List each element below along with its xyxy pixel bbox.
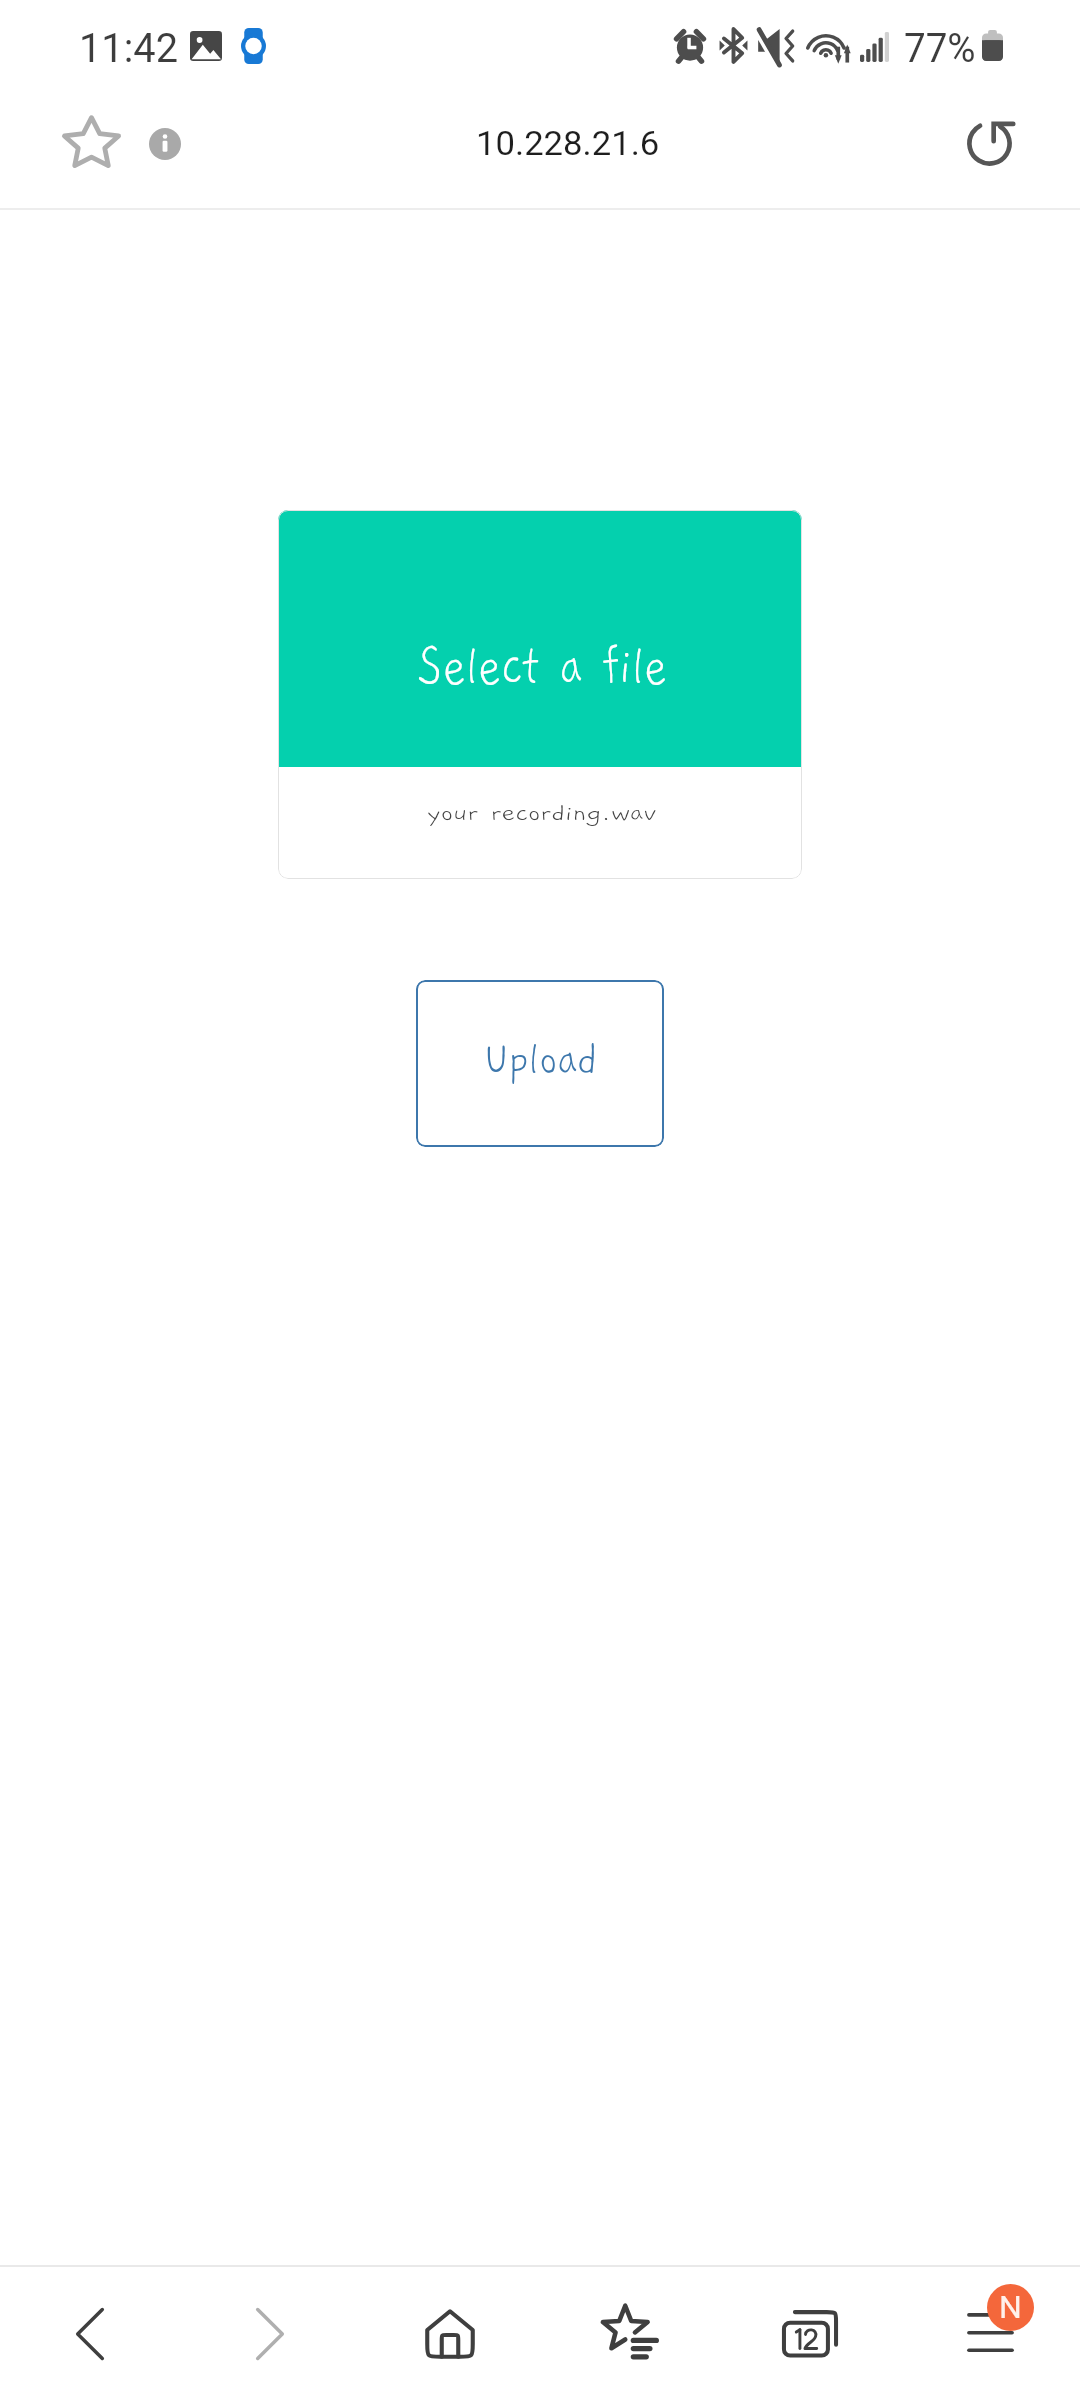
staticText: your recording.wav (427, 801, 657, 826)
button[interactable]: Select a file (278, 510, 802, 879)
button[interactable]: Tabs (720, 2267, 900, 2400)
button[interactable]: Reload page (945, 98, 1034, 188)
staticText: Upload (484, 1033, 598, 1085)
button[interactable]: Home (360, 2267, 540, 2400)
button[interactable]: Page information (134, 113, 195, 174)
staticText: N (999, 2288, 1022, 2326)
button[interactable]: Forward (180, 2267, 360, 2400)
staticText: Select a file (418, 635, 667, 698)
staticText: 10.228.21.6 (476, 123, 660, 163)
staticText: 11:42 (79, 24, 179, 72)
button[interactable]: Add bookmark (44, 97, 138, 187)
button[interactable]: Back (0, 2267, 180, 2400)
button[interactable]: Upload (416, 980, 664, 1147)
button[interactable]: Bookmarks (540, 2267, 720, 2400)
staticText: 77% (904, 24, 976, 72)
button[interactable]: More options (900, 2267, 1080, 2400)
